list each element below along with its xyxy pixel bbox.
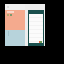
button[interactable] [5,4,25,10]
button[interactable] [5,10,25,30]
